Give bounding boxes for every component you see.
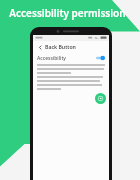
button[interactable]: Accessibility bbox=[33, 52, 109, 64]
staticText: Back Button bbox=[45, 43, 76, 50]
staticText: Accessibility bbox=[37, 55, 66, 62]
staticText: Accessibility permission bbox=[9, 6, 126, 20]
button[interactable]: Back bbox=[95, 93, 106, 104]
button[interactable]: Navigate up bbox=[36, 43, 44, 51]
